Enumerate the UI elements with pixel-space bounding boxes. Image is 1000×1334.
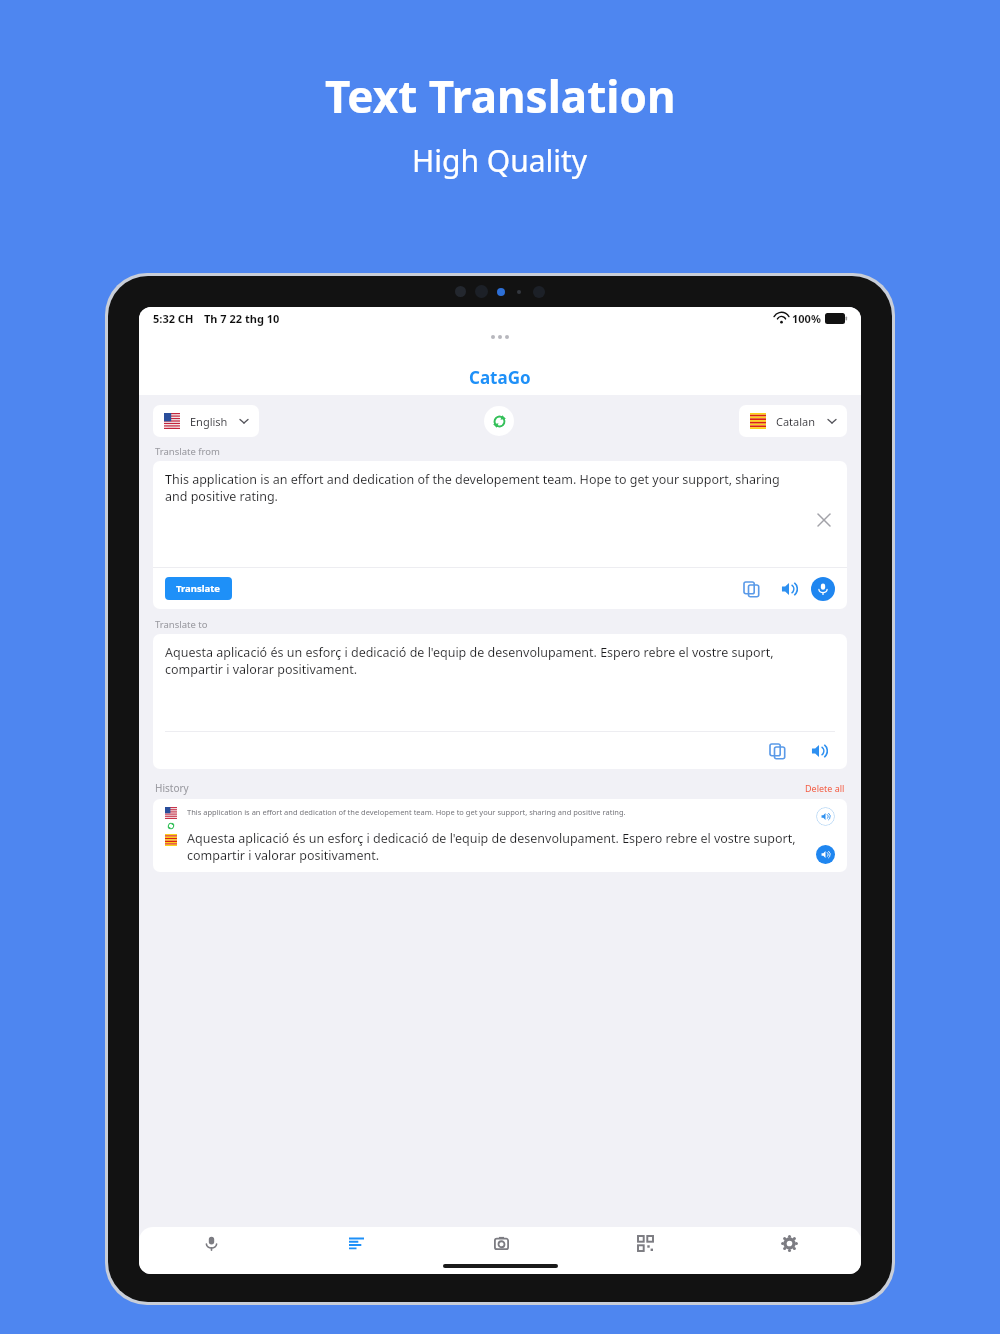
button[interactable]: Delete all	[805, 782, 845, 794]
staticText: Aquesta aplicació és un esforç i dedicac…	[187, 830, 808, 864]
staticText: Catalan	[776, 414, 816, 429]
button[interactable]: Translate	[165, 577, 232, 600]
button[interactable]: Catalan	[739, 405, 847, 437]
staticText: This application is an effort and dedica…	[187, 807, 626, 817]
button[interactable]: Voice	[139, 1227, 284, 1259]
staticText: High Quality	[412, 140, 588, 181]
button[interactable]: Text	[284, 1227, 429, 1259]
staticText: CataGo	[469, 366, 531, 389]
staticText: English	[190, 414, 228, 429]
staticText: 100%	[792, 311, 821, 326]
button[interactable]: Play source	[816, 807, 835, 826]
button[interactable]: Swap languages	[484, 406, 514, 436]
staticText: Translate from	[155, 445, 223, 458]
button[interactable]: Speak	[777, 577, 801, 601]
staticText: Th 7 22 thg 10	[204, 311, 280, 326]
button[interactable]: Scan code	[573, 1227, 717, 1259]
button[interactable]: Speak translation	[807, 739, 831, 763]
staticText: Text Translation	[325, 66, 676, 126]
button[interactable]: English	[153, 405, 259, 437]
button[interactable]: Copy translation	[765, 739, 789, 763]
staticText: 5:32 CH	[153, 311, 194, 326]
staticText: Translate	[176, 582, 221, 595]
button[interactable]: Voice input	[811, 577, 835, 601]
button[interactable]: Play translation	[816, 845, 835, 864]
button[interactable]: Settings	[717, 1227, 861, 1259]
button[interactable]: Camera	[429, 1227, 573, 1259]
button[interactable]: Copy	[739, 577, 763, 601]
staticText: Aquesta aplicació és un esforç i dedicac…	[165, 644, 807, 678]
button[interactable]: Clear text	[813, 509, 835, 531]
staticText: History	[155, 781, 189, 795]
staticText: Delete all	[805, 782, 845, 794]
staticText: Translate to	[155, 618, 210, 631]
staticText: This application is an effort and dedica…	[165, 471, 805, 505]
button[interactable]: This application is an effort and dedica…	[153, 799, 847, 872]
